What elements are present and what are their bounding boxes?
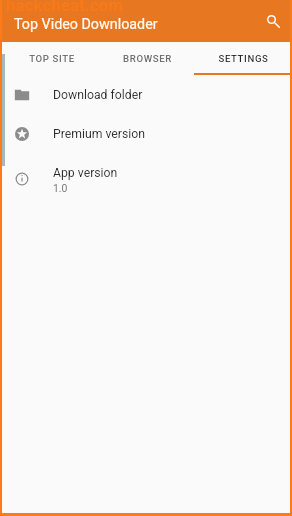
staticText: App version bbox=[53, 166, 118, 180]
button[interactable]: SETTINGS bbox=[194, 42, 290, 75]
staticText: TOP SITE bbox=[29, 53, 75, 64]
button[interactable]: App version bbox=[2, 153, 290, 204]
button[interactable]: Search bbox=[261, 9, 285, 33]
staticText: Download folder bbox=[53, 88, 143, 102]
staticText: BROWSER bbox=[123, 53, 172, 64]
staticText: Top Video Downloader bbox=[14, 16, 158, 33]
button[interactable]: BROWSER bbox=[98, 42, 194, 75]
staticText: SETTINGS bbox=[218, 53, 269, 64]
staticText: 1.0 bbox=[53, 182, 68, 194]
staticText: Premium version bbox=[53, 127, 146, 141]
button[interactable]: TOP SITE bbox=[2, 42, 98, 75]
staticText: hackcheat.com bbox=[6, 0, 123, 15]
button[interactable]: Download folder bbox=[2, 75, 290, 114]
button[interactable]: Premium version bbox=[2, 114, 290, 153]
